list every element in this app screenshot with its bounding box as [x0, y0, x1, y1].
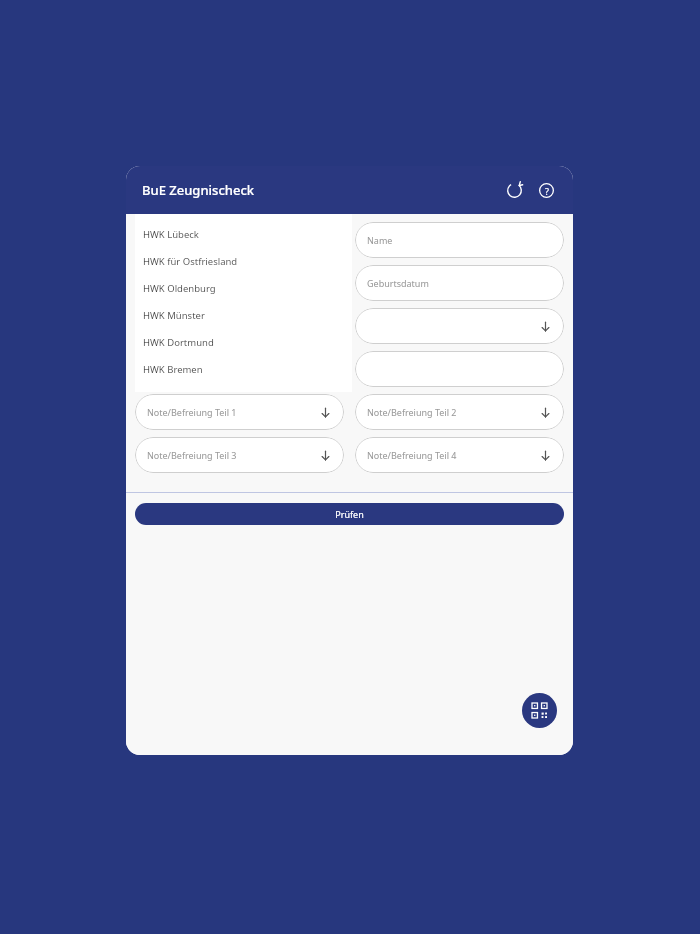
button[interactable]: HWK Münster	[135, 302, 352, 329]
staticText: HWK Bremen	[143, 363, 203, 376]
staticText: HWK für Ostfriesland	[143, 255, 238, 268]
staticText: HWK Oldenburg	[143, 282, 216, 295]
button[interactable]	[355, 308, 564, 344]
button[interactable]: Name	[355, 222, 564, 258]
button[interactable]: HWK Oldenburg	[135, 275, 352, 302]
staticText: HWK Münster	[143, 309, 205, 322]
staticText: Prüfen	[335, 508, 364, 520]
button[interactable]: HWK für Ostfriesland	[135, 248, 352, 275]
button[interactable]: Help	[531, 175, 561, 205]
staticText: Teil	[147, 363, 162, 375]
button[interactable]: Prüfungsjahr	[135, 308, 344, 344]
button[interactable]: Refresh	[499, 175, 529, 205]
staticText: ?	[545, 185, 549, 197]
button[interactable]: HWK Lübeck	[135, 221, 352, 248]
button[interactable]: HWK Dortmund	[135, 329, 352, 356]
staticText: Note/Befreiung Teil 4	[367, 449, 457, 461]
button[interactable]: Geburtsdatum	[355, 265, 564, 301]
staticText: HWK Lübeck	[143, 228, 199, 241]
button[interactable]: Note/Befreiung Teil 4	[355, 437, 564, 473]
button[interactable]: Note/Befreiung Teil 2	[355, 394, 564, 430]
button[interactable]: Beruf	[135, 265, 344, 301]
button[interactable]: Teil	[135, 351, 344, 387]
button[interactable]: Note/Befreiung Teil 1	[135, 394, 344, 430]
button[interactable]: Prüfen	[135, 503, 564, 525]
button[interactable]: Scan QR code	[522, 693, 557, 728]
staticText: Note/Befreiung Teil 3	[147, 449, 237, 461]
staticText: HWK Dortmund	[143, 336, 214, 349]
staticText: Note/Befreiung Teil 1	[147, 406, 237, 418]
button[interactable]	[355, 351, 564, 387]
button[interactable]: HWK Bremen	[135, 356, 352, 383]
staticText: Name	[367, 234, 393, 246]
button[interactable]: Handwerkskammer	[135, 222, 344, 258]
staticText: Geburtsdatum	[367, 277, 429, 289]
staticText: BuE Zeugnischeck	[142, 181, 255, 199]
button[interactable]: Note/Befreiung Teil 3	[135, 437, 344, 473]
staticText: Beruf	[147, 277, 171, 289]
staticText: Note/Befreiung Teil 2	[367, 406, 457, 418]
staticText: Handwerkskammer	[147, 234, 231, 246]
